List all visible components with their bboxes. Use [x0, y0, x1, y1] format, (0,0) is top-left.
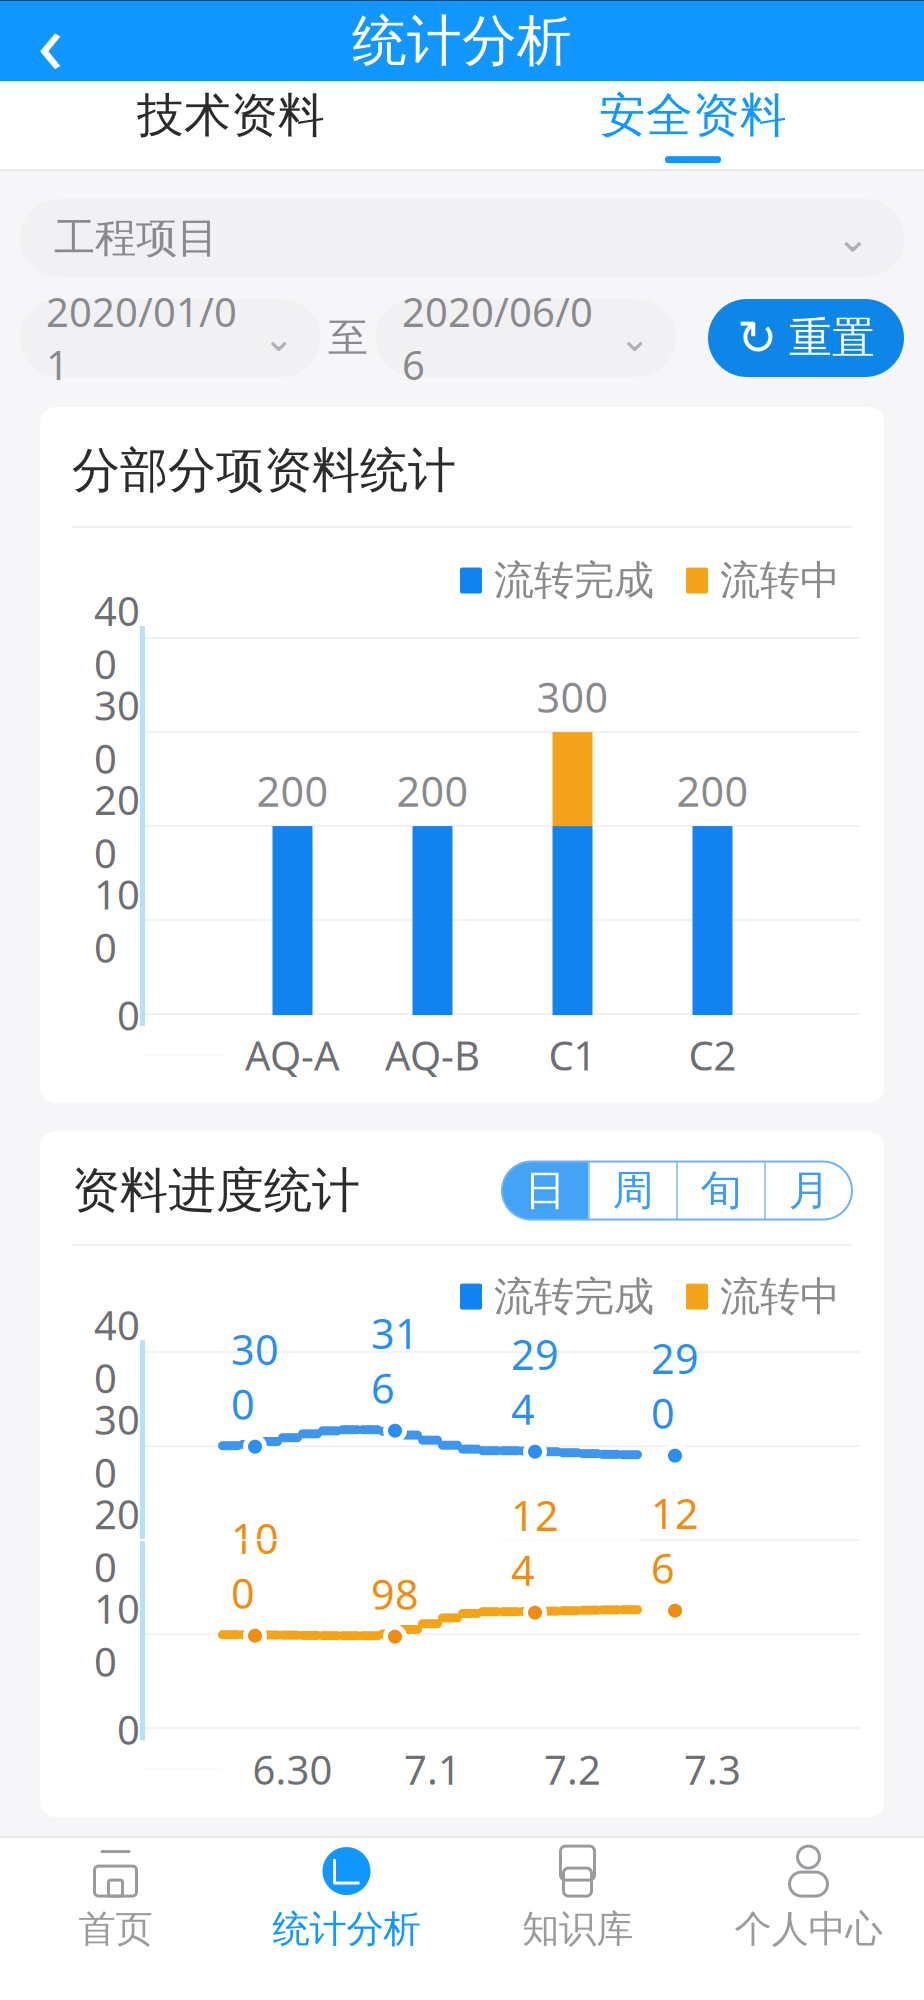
staticText: 中国移动	[127, 0, 287, 3]
staticText: 300	[94, 678, 140, 785]
button[interactable]: 旬	[676, 1162, 764, 1220]
button[interactable]: 技术资料	[0, 81, 462, 169]
staticText: 周	[612, 1165, 653, 1216]
staticText: 工程项目	[54, 213, 218, 263]
button[interactable]: ↻	[708, 299, 904, 377]
staticText: 7.2	[544, 1743, 601, 1796]
staticText: 2020/01/01	[46, 285, 237, 391]
staticText: 旬	[700, 1165, 741, 1216]
button[interactable]: Back	[0, 1, 100, 81]
staticText: 300	[94, 1393, 140, 1499]
button[interactable]: 个人中心	[693, 1838, 924, 1958]
button[interactable]: 月	[764, 1162, 852, 1220]
staticText: 200	[396, 763, 468, 818]
staticText: 100	[231, 1510, 279, 1620]
staticText: 技术资料	[137, 87, 325, 144]
staticText: 流转完成	[494, 1272, 654, 1321]
staticText: ⌄	[263, 317, 294, 359]
staticText: AQ-B	[385, 1028, 480, 1082]
staticText: 流转中	[720, 556, 840, 605]
staticText: 300	[536, 669, 608, 724]
button[interactable]: 2020/06/06	[376, 299, 676, 377]
button[interactable]: 首页	[0, 1838, 231, 1958]
staticText: C2	[688, 1028, 736, 1082]
staticText: 统计分析	[352, 7, 572, 74]
staticText: 98	[371, 1566, 419, 1621]
staticText: 400	[94, 584, 140, 690]
button[interactable]: 周	[588, 1162, 676, 1220]
staticText: 22:52	[451, 0, 554, 5]
staticText: C1	[548, 1028, 596, 1082]
staticText: 流转中	[720, 1272, 840, 1321]
staticText: 300	[231, 1321, 279, 1431]
staticText: AQ-A	[245, 1028, 340, 1082]
button[interactable]: 日	[502, 1162, 588, 1220]
staticText: 200	[256, 763, 328, 818]
staticText: 200	[676, 763, 748, 818]
staticText: 统计分析	[272, 1906, 420, 1952]
staticText: 6.30	[252, 1743, 332, 1796]
staticText: ‹	[37, 0, 63, 98]
staticText: 至	[328, 313, 368, 362]
staticText: 200	[94, 773, 140, 879]
staticText: 2020/06/06	[402, 285, 593, 391]
button[interactable]: 工程项目	[20, 199, 904, 277]
staticText: 知识库	[522, 1906, 633, 1952]
staticText: 个人中心	[734, 1906, 882, 1952]
staticText: 0	[117, 1703, 140, 1756]
button[interactable]: 知识库	[462, 1838, 693, 1958]
staticText: 0	[117, 988, 140, 1042]
staticText: 37%	[760, 0, 839, 5]
button[interactable]: 安全资料	[462, 81, 924, 169]
staticText: 294	[511, 1326, 559, 1436]
staticText: 分部分项资料统计	[72, 441, 456, 500]
staticText: 290	[651, 1330, 699, 1440]
staticText: 重置	[789, 312, 875, 364]
staticText: ⌄	[836, 215, 870, 261]
staticText: 316	[371, 1305, 419, 1415]
staticText: 流转完成	[494, 556, 654, 605]
staticText: 100	[94, 1582, 140, 1688]
staticText: ↻	[737, 311, 777, 365]
staticText: 月	[788, 1165, 829, 1216]
staticText: 7.3	[684, 1743, 741, 1796]
staticText: 日	[524, 1165, 565, 1216]
staticText: 首页	[78, 1906, 152, 1952]
staticText: 200	[94, 1487, 140, 1593]
staticText: 资料进度统计	[72, 1161, 360, 1220]
staticText: 124	[511, 1487, 559, 1597]
button[interactable]: 2020/01/01	[20, 299, 320, 377]
staticText: 安全资料	[599, 87, 787, 144]
staticText: 100	[94, 867, 140, 974]
button[interactable]: 统计分析	[231, 1838, 462, 1958]
staticText: 7.1	[404, 1743, 461, 1796]
staticText: 400	[94, 1298, 140, 1404]
staticText: 126	[651, 1485, 699, 1595]
staticText: ⌄	[619, 317, 650, 359]
